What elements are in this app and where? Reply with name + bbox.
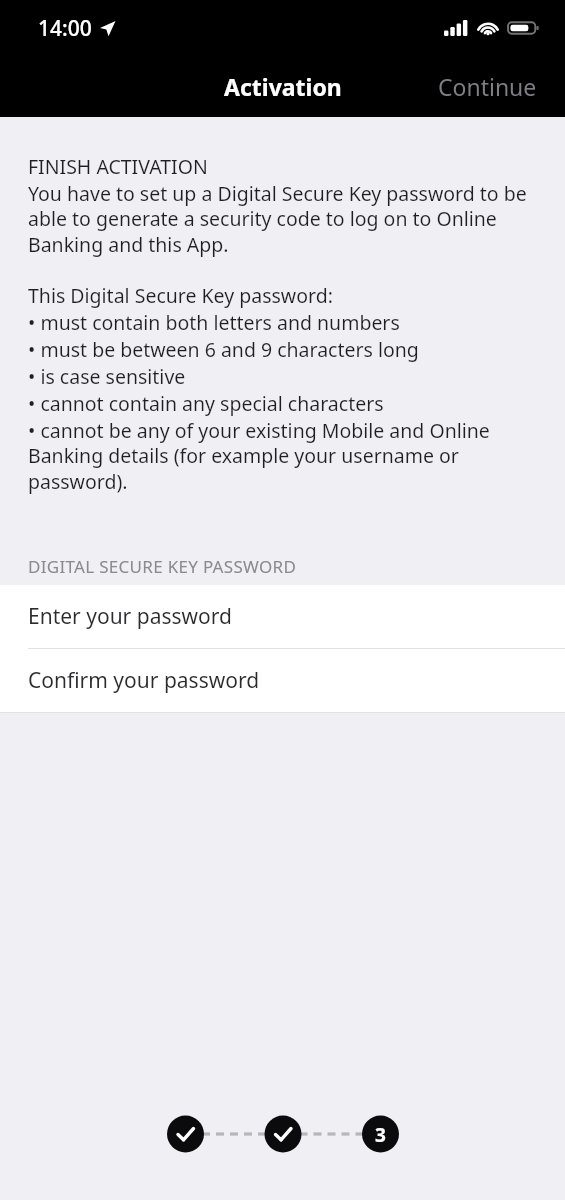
staticText: 3: [375, 1122, 386, 1148]
staticText: • cannot be any of your existing Mobile …: [28, 417, 537, 495]
staticText: You have to set up a Digital Secure Key …: [28, 180, 537, 258]
staticText: • must be between 6 and 9 characters lon…: [28, 336, 419, 363]
staticText: Continue: [438, 71, 537, 102]
button[interactable]: Continue: [410, 59, 565, 114]
staticText: FINISH ACTIVATION: [28, 153, 208, 180]
staticText: • is case sensitive: [28, 363, 186, 390]
staticText: This Digital Secure Key password:: [28, 282, 333, 309]
button[interactable]: Confirm your password: [0, 649, 565, 712]
staticText: Confirm your password: [28, 666, 260, 695]
staticText: 14:00: [38, 14, 92, 43]
staticText: • must contain both letters and numbers: [28, 309, 400, 336]
staticText: Enter your password: [28, 602, 232, 631]
staticText: • cannot contain any special characters: [28, 390, 384, 417]
staticText: Activation: [224, 71, 342, 102]
button[interactable]: Enter your password: [0, 585, 565, 648]
staticText: DIGITAL SECURE KEY PASSWORD: [28, 555, 297, 578]
